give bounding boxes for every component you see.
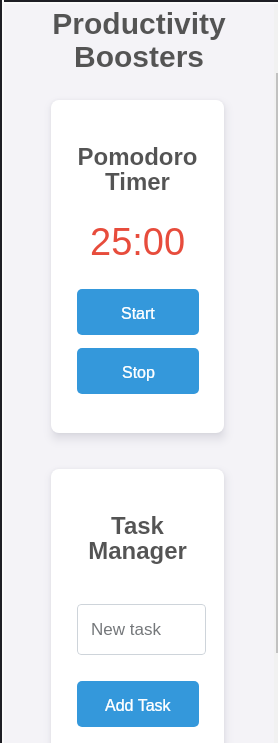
staticText: 25:00 [90,221,186,263]
staticText: Add Task [105,697,171,715]
staticText: Stop [122,364,155,382]
staticText: Task Manager [71,512,204,564]
staticText: New task [91,620,161,639]
button[interactable]: Start [77,289,199,335]
button[interactable]: Stop [77,348,199,394]
staticText: Pomodoro Timer [71,143,204,195]
staticText: Start [121,305,155,323]
staticText: Productivity Boosters [0,7,278,74]
button[interactable]: Add Task [77,681,199,727]
button[interactable]: New task [77,604,206,655]
